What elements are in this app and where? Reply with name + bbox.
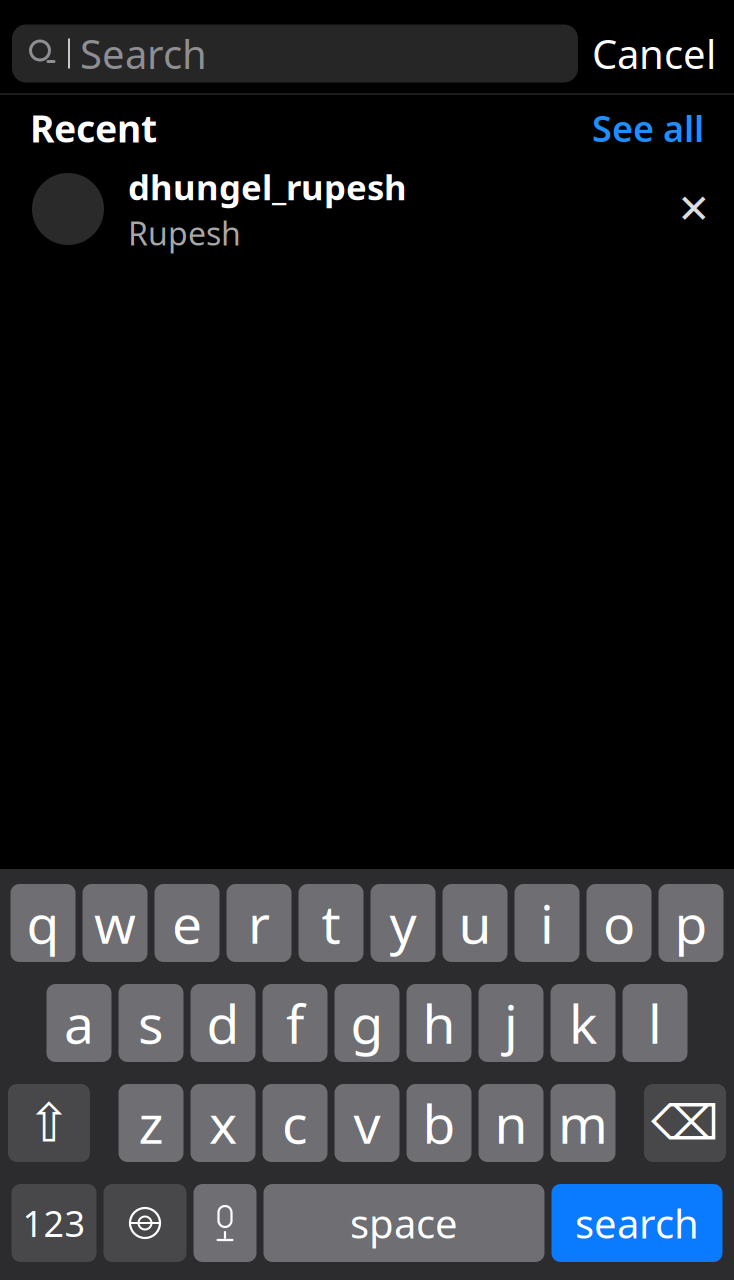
button[interactable]: v xyxy=(334,1084,399,1162)
staticText: p xyxy=(674,888,707,958)
button[interactable]: See all xyxy=(576,98,704,158)
button[interactable]: 123 xyxy=(11,1184,96,1262)
staticText: b xyxy=(422,1088,455,1158)
button[interactable]: Delete xyxy=(644,1084,726,1162)
staticText: h xyxy=(422,988,455,1058)
button[interactable]: z xyxy=(118,1084,183,1162)
staticText: j xyxy=(504,988,518,1058)
staticText: dhungel_rupesh xyxy=(128,164,407,210)
staticText: r xyxy=(248,888,270,958)
button[interactable]: u xyxy=(442,884,507,962)
staticText: w xyxy=(94,888,136,958)
staticText: g xyxy=(350,988,383,1058)
staticText: d xyxy=(206,988,239,1058)
button[interactable]: b xyxy=(406,1084,471,1162)
staticText: s xyxy=(138,988,164,1058)
button[interactable]: d xyxy=(190,984,255,1062)
button[interactable]: t xyxy=(298,884,363,962)
button[interactable]: r xyxy=(226,884,291,962)
button[interactable]: Next keyboard xyxy=(103,1184,186,1262)
button[interactable]: j xyxy=(478,984,543,1062)
staticText: i xyxy=(540,888,554,958)
staticText: space xyxy=(350,1196,458,1249)
staticText: f xyxy=(286,988,304,1058)
staticText: Search xyxy=(80,27,207,80)
button[interactable]: i xyxy=(514,884,579,962)
staticText: search xyxy=(575,1196,699,1249)
button[interactable]: s xyxy=(118,984,183,1062)
button[interactable]: Shift xyxy=(8,1084,90,1162)
staticText: q xyxy=(26,888,59,958)
staticText: k xyxy=(569,988,597,1058)
button[interactable]: Remove dhungel_rupesh from recent search… xyxy=(672,187,716,231)
staticText: Cancel xyxy=(592,27,716,80)
staticText: u xyxy=(458,888,491,958)
staticText: a xyxy=(64,988,94,1058)
button[interactable]: Dictation xyxy=(193,1184,256,1262)
staticText: z xyxy=(138,1088,163,1158)
staticText: ✕ xyxy=(677,186,711,232)
button[interactable]: y xyxy=(370,884,435,962)
button[interactable]: a xyxy=(46,984,111,1062)
button[interactable]: f xyxy=(262,984,327,1062)
button[interactable]: q xyxy=(10,884,75,962)
button[interactable]: n xyxy=(478,1084,543,1162)
button[interactable]: l xyxy=(622,984,687,1062)
staticText: v xyxy=(353,1088,380,1158)
staticText: Recent xyxy=(30,103,157,153)
staticText: See all xyxy=(592,104,704,152)
button[interactable]: c xyxy=(262,1084,327,1162)
button[interactable]: dhungel_rupesh xyxy=(0,161,672,257)
staticText: e xyxy=(172,888,202,958)
staticText: l xyxy=(648,988,662,1058)
button[interactable]: m xyxy=(550,1084,615,1162)
staticText: t xyxy=(321,888,340,958)
button[interactable]: g xyxy=(334,984,399,1062)
button[interactable]: Cancel xyxy=(586,24,722,82)
staticText: c xyxy=(282,1088,308,1158)
staticText: ⌫ xyxy=(651,1096,719,1150)
button[interactable]: Search xyxy=(12,24,578,82)
button[interactable]: search xyxy=(551,1184,722,1262)
staticText: 123 xyxy=(22,1199,85,1247)
button[interactable]: k xyxy=(550,984,615,1062)
staticText: n xyxy=(494,1088,527,1158)
staticText: o xyxy=(603,888,635,958)
staticText: Rupesh xyxy=(128,212,241,254)
button[interactable]: w xyxy=(82,884,147,962)
staticText: y xyxy=(389,888,416,958)
staticText: x xyxy=(209,1088,237,1158)
button[interactable]: e xyxy=(154,884,219,962)
staticText: m xyxy=(558,1088,608,1158)
button[interactable]: space xyxy=(263,1184,544,1262)
button[interactable]: p xyxy=(658,884,723,962)
button[interactable]: h xyxy=(406,984,471,1062)
button[interactable]: o xyxy=(586,884,651,962)
button[interactable]: x xyxy=(190,1084,255,1162)
staticText: ⇧ xyxy=(26,1093,71,1153)
